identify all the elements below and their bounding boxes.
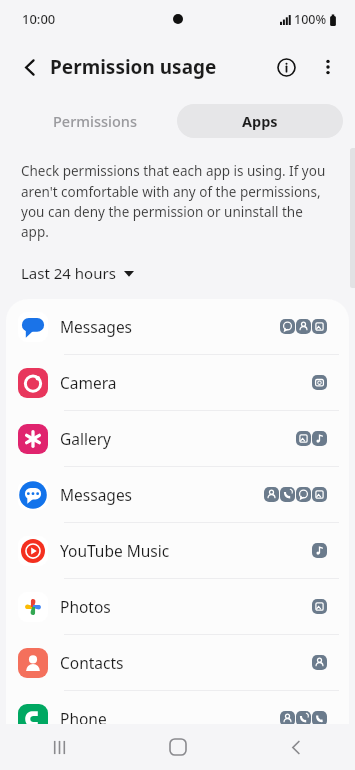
staticText: Permission usage <box>50 54 217 80</box>
button[interactable]: Photos <box>6 579 349 634</box>
button[interactable]: Last 24 hours <box>21 259 134 287</box>
button[interactable]: Recent apps <box>0 724 119 770</box>
button[interactable]: Back <box>10 47 50 87</box>
staticText: Gallery <box>60 428 112 449</box>
staticText: Check permissions that each app is using… <box>21 162 333 241</box>
staticText: Phone <box>60 708 107 729</box>
button[interactable]: More options <box>307 46 349 88</box>
button[interactable]: YouTube Music <box>6 523 349 578</box>
staticText: Apps <box>242 111 278 131</box>
staticText: Camera <box>60 372 117 393</box>
button[interactable]: Home <box>119 724 237 770</box>
staticText: Photos <box>60 596 111 617</box>
button[interactable]: Back <box>237 724 355 770</box>
button[interactable]: Camera <box>6 355 349 410</box>
staticText: Contacts <box>60 652 124 673</box>
staticText: Last 24 hours <box>21 263 116 283</box>
staticText: Messages <box>60 484 133 505</box>
staticText: YouTube Music <box>60 540 170 561</box>
staticText: Messages <box>60 316 133 337</box>
staticText: 100% <box>294 11 327 28</box>
staticText: Permissions <box>53 111 137 131</box>
button[interactable]: Contacts <box>6 635 349 690</box>
button[interactable]: Messages <box>6 299 349 354</box>
staticText: 10:00 <box>22 10 56 28</box>
button[interactable]: Messages <box>6 467 349 522</box>
button[interactable]: Phone <box>6 691 349 746</box>
button[interactable]: Apps <box>177 104 343 138</box>
button[interactable]: Permissions <box>12 104 177 138</box>
button[interactable]: Information <box>265 46 307 88</box>
button[interactable]: Gallery <box>6 411 349 466</box>
